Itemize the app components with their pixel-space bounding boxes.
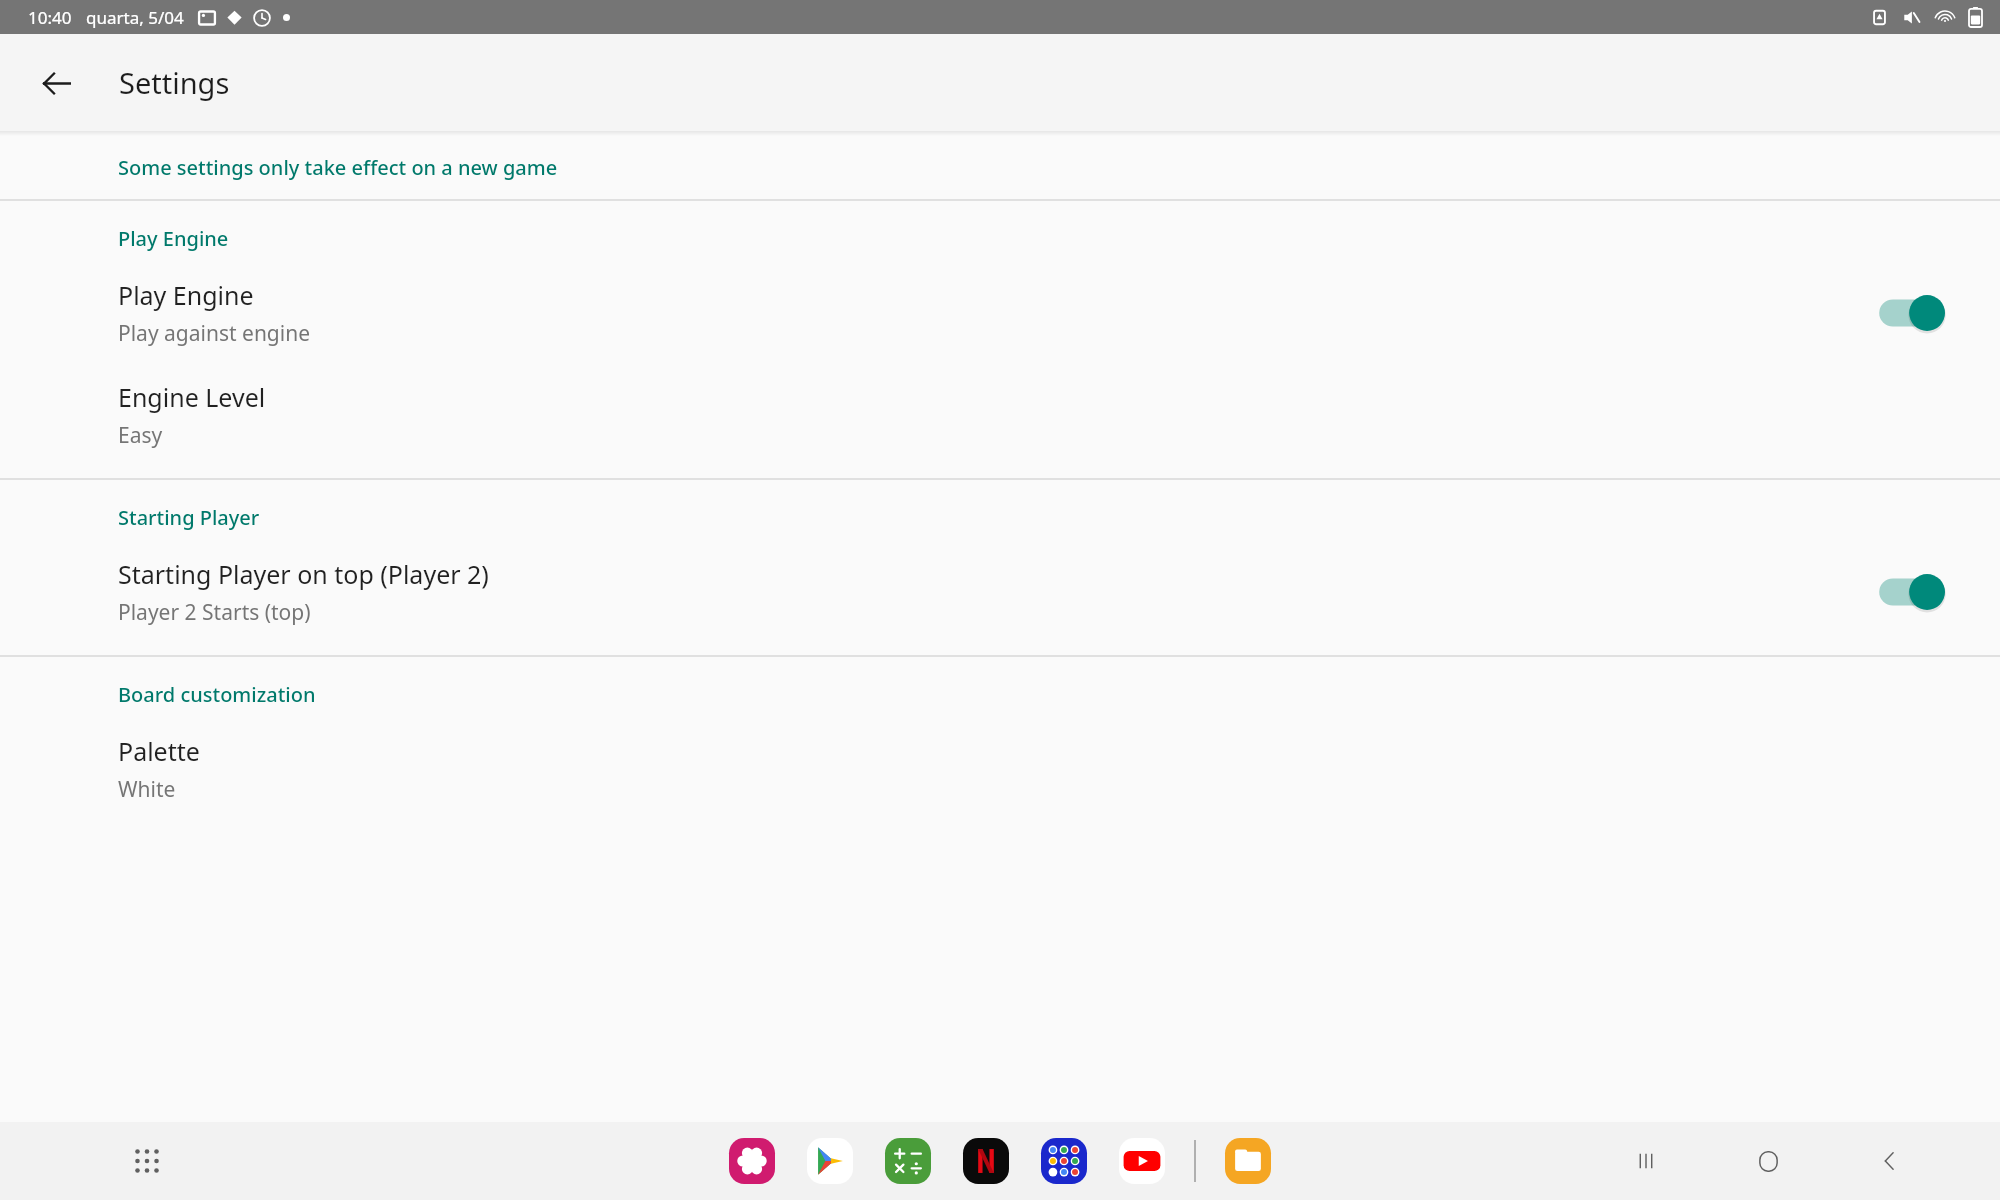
button[interactable]: Apps (120, 1134, 174, 1188)
staticText: Player 2 Starts (top) (118, 598, 311, 627)
button[interactable]: Gallery (726, 1135, 778, 1187)
button[interactable]: Engine Level (0, 364, 2000, 466)
staticText: White (118, 775, 176, 804)
button[interactable]: Toggle Play Engine (1876, 287, 1956, 339)
staticText: Play against engine (118, 319, 311, 348)
button[interactable]: Play Store (804, 1135, 856, 1187)
button[interactable]: My Files (1222, 1135, 1274, 1187)
staticText: Play Engine (118, 278, 254, 312)
button[interactable]: Home (1740, 1133, 1796, 1189)
button[interactable]: Calculator (882, 1135, 934, 1187)
button[interactable]: Play Engine (0, 262, 2000, 364)
staticText: Some settings only take effect on a new … (118, 154, 558, 181)
staticText: Play Engine (118, 225, 229, 252)
staticText: Board customization (118, 681, 316, 708)
staticText: Starting Player on top (Player 2) (118, 557, 489, 591)
staticText: quarta, 5/04 (86, 6, 184, 29)
button[interactable]: Palette (0, 718, 2000, 820)
staticText: Settings (119, 63, 230, 102)
staticText: Palette (118, 734, 200, 768)
button[interactable]: Recents (1618, 1133, 1674, 1189)
button[interactable]: Back (1862, 1133, 1918, 1189)
button[interactable]: YouTube (1116, 1135, 1168, 1187)
staticText: Engine Level (118, 380, 266, 414)
staticText: 10:40 (28, 6, 72, 29)
button[interactable]: Starting Player on top (Player 2) (0, 541, 2000, 643)
button[interactable]: Toggle Starting Player on top (Player 2) (1876, 566, 1956, 618)
staticText: Easy (118, 421, 163, 450)
staticText: Starting Player (118, 504, 260, 531)
button[interactable]: Netflix (960, 1135, 1012, 1187)
button[interactable]: Back (30, 57, 82, 109)
button[interactable]: Google folder (1038, 1135, 1090, 1187)
